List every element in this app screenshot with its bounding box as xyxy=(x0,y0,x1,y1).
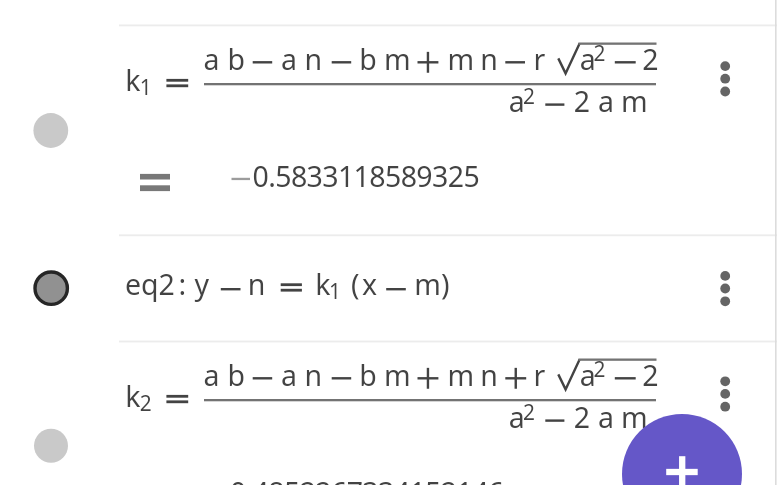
button[interactable]: More options for k1 xyxy=(701,54,749,102)
button[interactable]: More options for k2 xyxy=(701,371,749,419)
button[interactable]: Toggle visibility of k1 xyxy=(26,106,74,154)
button[interactable]: More options for eq2 xyxy=(701,265,749,313)
button[interactable]: Toggle visibility of k2 xyxy=(26,423,74,471)
button[interactable]: Toggle visibility of eq2 xyxy=(26,265,74,313)
button[interactable]: Add new expression xyxy=(622,414,742,485)
